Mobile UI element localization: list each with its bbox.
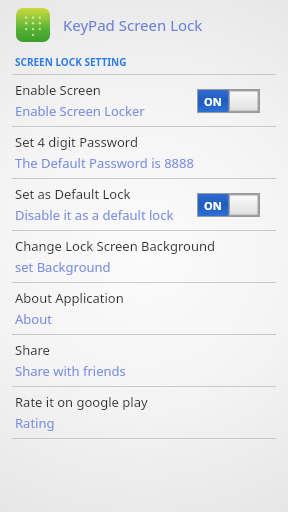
button[interactable]: Enable Screen: [0, 75, 288, 126]
staticText: Share with friends: [15, 362, 126, 380]
staticText: ON: [204, 94, 222, 109]
button[interactable]: Set 4 digit Password: [0, 127, 288, 178]
staticText: Rating: [15, 414, 55, 432]
staticText: About: [15, 310, 52, 328]
staticText: Set as Default Lock: [15, 185, 131, 203]
button[interactable]: Change Lock Screen Background: [0, 231, 288, 282]
button[interactable]: Toggle Enable Screen: [197, 89, 260, 113]
staticText: Enable Screen Locker: [15, 102, 145, 120]
staticText: About Application: [15, 289, 124, 307]
button[interactable]: About Application: [0, 283, 288, 334]
button[interactable]: Toggle Set as Default Lock: [197, 193, 260, 217]
staticText: The Default Password is 8888: [15, 154, 194, 172]
staticText: KeyPad Screen Lock: [63, 15, 203, 35]
button[interactable]: Set as Default Lock: [0, 179, 288, 230]
staticText: Set 4 digit Password: [15, 133, 138, 151]
staticText: Rate it on google play: [15, 393, 148, 411]
staticText: ON: [204, 198, 222, 213]
button[interactable]: Share: [0, 335, 288, 386]
staticText: SCREEN LOCK SETTING: [15, 55, 127, 69]
button[interactable]: Rate it on google play: [0, 387, 288, 438]
staticText: Change Lock Screen Background: [15, 237, 216, 255]
staticText: Share: [15, 341, 50, 359]
staticText: set Background: [15, 258, 111, 276]
staticText: Enable Screen: [15, 81, 101, 99]
staticText: Disable it as a default lock: [15, 206, 174, 224]
